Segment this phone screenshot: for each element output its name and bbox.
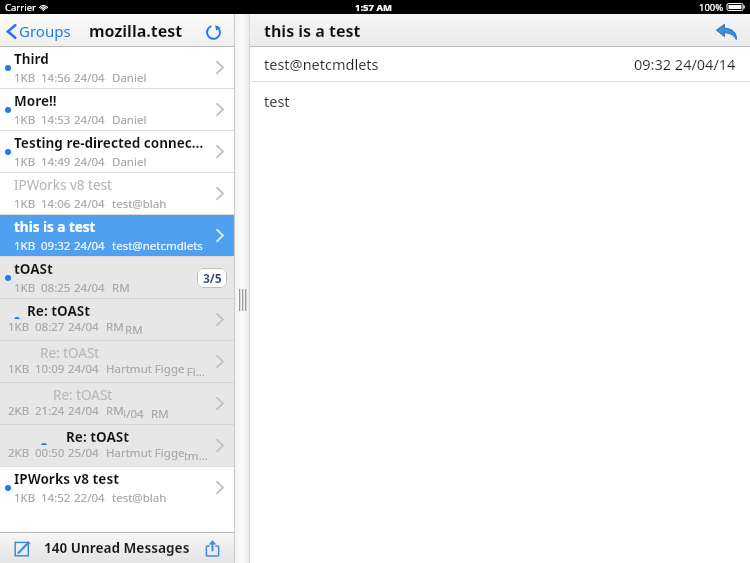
- staticText: 00:50: [35, 445, 65, 461]
- staticText: RM: [106, 403, 124, 419]
- button[interactable]: Re: tOASt: [0, 341, 234, 382]
- staticText: 1KB: [8, 319, 30, 335]
- staticText: 100%: [699, 1, 724, 14]
- staticText: 1KB: [14, 490, 36, 506]
- staticText: RM: [151, 406, 169, 422]
- staticText: 1KB: [14, 112, 36, 128]
- staticText: test: [264, 91, 290, 111]
- button[interactable]: Reply: [712, 17, 740, 45]
- staticText: 08:27: [35, 319, 65, 335]
- staticText: 21:24: [35, 403, 65, 419]
- staticText: Re: tOASt: [53, 386, 113, 404]
- staticText: 14:56: [41, 70, 71, 86]
- staticText: test@blah: [112, 196, 167, 212]
- button[interactable]: Groups: [5, 17, 73, 45]
- staticText: IPWorks v8 test: [14, 176, 112, 194]
- button[interactable]: Share: [198, 534, 226, 562]
- staticText: Daniel: [112, 154, 147, 170]
- staticText: 24/04: [68, 361, 99, 377]
- staticText: Re: tOASt: [40, 344, 100, 362]
- staticText: Groups: [19, 21, 71, 41]
- staticText: Carrier: [5, 1, 36, 14]
- staticText: 25/04: [126, 448, 157, 464]
- button[interactable]: 3/5: [197, 268, 227, 288]
- staticText: 2KB: [53, 406, 75, 422]
- staticText: 24/04: [113, 406, 144, 422]
- staticText: Daniel: [112, 112, 147, 128]
- staticText: 24/04: [74, 196, 105, 212]
- staticText: Hartmut Figge: [106, 361, 185, 377]
- staticText: 21:24: [80, 406, 110, 422]
- staticText: 22/04: [74, 490, 105, 506]
- staticText: RM: [106, 319, 124, 335]
- staticText: 24/04: [74, 154, 105, 170]
- staticText: 24/04: [74, 280, 105, 296]
- staticText: Re: tOASt: [66, 428, 130, 446]
- button[interactable]: More!!: [0, 89, 234, 130]
- staticText: Third: [14, 50, 49, 68]
- staticText: 1KB: [14, 280, 36, 296]
- button[interactable]: this is a test: [0, 215, 234, 256]
- staticText: RM: [112, 280, 130, 296]
- staticText: RM: [125, 322, 143, 338]
- staticText: 3/5: [203, 270, 222, 286]
- staticText: test@netcmdlets: [112, 238, 203, 254]
- staticText: 09:32: [41, 238, 71, 254]
- staticText: 08:27: [54, 322, 84, 338]
- staticText: Hartmut Figge: [106, 445, 185, 461]
- staticText: 10:09: [35, 361, 65, 377]
- button[interactable]: IPWorks v8 test: [0, 173, 234, 214]
- button[interactable]: Third: [0, 47, 234, 88]
- staticText: test@blah: [112, 490, 167, 506]
- button[interactable]: Re: tOASt: [0, 425, 234, 466]
- staticText: IPWorks v8 test: [14, 470, 120, 488]
- staticText: 1KB: [8, 361, 30, 377]
- staticText: mozilla.test: [89, 20, 183, 42]
- staticText: 24/04: [87, 322, 118, 338]
- button[interactable]: Compose: [8, 534, 36, 562]
- staticText: Testing re-directed connection: [14, 134, 208, 152]
- button[interactable]: tOASt: [0, 257, 234, 298]
- staticText: 2KB: [8, 403, 30, 419]
- staticText: 14:06: [41, 196, 71, 212]
- button[interactable]: IPWorks v8 test: [0, 467, 234, 508]
- staticText: 1KB: [40, 364, 62, 380]
- button[interactable]: Re: tOASt: [0, 383, 234, 424]
- staticText: 14:49: [41, 154, 71, 170]
- staticText: this is a test: [264, 20, 361, 42]
- staticText: 1KB: [14, 238, 36, 254]
- staticText: 08:25: [41, 280, 71, 296]
- staticText: 14:53: [41, 112, 71, 128]
- staticText: 1KB: [14, 196, 36, 212]
- staticText: 24/04: [100, 364, 131, 380]
- staticText: 10:09: [67, 364, 97, 380]
- staticText: Hartmut Figge: [138, 364, 208, 380]
- staticText: Hartmut Figge: [164, 448, 208, 464]
- staticText: 1KB: [14, 154, 36, 170]
- staticText: Re: tOASt: [27, 302, 91, 320]
- staticText: 140 Unread Messages: [44, 539, 190, 557]
- staticText: 24/04: [74, 112, 105, 128]
- button[interactable]: Testing re-directed connection: [0, 131, 234, 172]
- staticText: 1:57 AM: [355, 1, 392, 14]
- staticText: 09:32 24/04/14: [634, 54, 736, 74]
- staticText: 24/04: [74, 70, 105, 86]
- staticText: 2KB: [8, 445, 30, 461]
- staticText: 00:50: [93, 448, 123, 464]
- staticText: 24/04: [74, 238, 105, 254]
- staticText: this is a test: [14, 218, 96, 236]
- staticText: 24/04: [68, 319, 99, 335]
- staticText: 25/04: [68, 445, 99, 461]
- staticText: 2KB: [66, 448, 88, 464]
- staticText: 24/04: [68, 403, 99, 419]
- staticText: tOASt: [14, 260, 53, 278]
- staticText: More!!: [14, 92, 57, 110]
- staticText: 14:52: [41, 490, 71, 506]
- button[interactable]: Refresh: [200, 18, 226, 44]
- button[interactable]: Re: tOASt: [0, 299, 234, 340]
- staticText: 1KB: [14, 70, 36, 86]
- staticText: 1KB: [27, 322, 49, 338]
- staticText: test@netcmdlets: [264, 54, 379, 74]
- staticText: Daniel: [112, 70, 147, 86]
